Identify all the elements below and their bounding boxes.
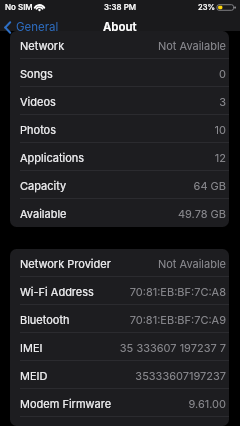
staticText: Videos — [20, 95, 56, 108]
staticText: Not Available — [157, 257, 226, 270]
staticText: 35333607197237 — [135, 369, 226, 382]
button[interactable]: Photos — [10, 115, 229, 143]
button[interactable]: Capacity — [10, 171, 229, 199]
staticText: 23% — [198, 3, 215, 12]
staticText: Network — [20, 39, 65, 52]
staticText: IMEI — [20, 341, 43, 354]
staticText: Capacity — [20, 179, 67, 192]
staticText: 3 — [219, 95, 226, 108]
other: Back — [3, 21, 12, 34]
button[interactable]: Videos — [10, 87, 229, 115]
button[interactable]: Songs — [10, 59, 229, 87]
button[interactable]: Network Provider — [10, 249, 229, 277]
staticText: Network Provider — [20, 257, 111, 270]
staticText: 3:38 PM — [104, 2, 137, 12]
button[interactable]: Wi-Fi Address — [10, 277, 229, 305]
button[interactable]: Network — [10, 31, 229, 59]
staticText: 0 — [219, 67, 226, 80]
staticText: Wi-Fi Address — [20, 285, 94, 298]
staticText: 9.61.00 — [188, 397, 226, 410]
staticText: 64 GB — [193, 179, 226, 192]
staticText: Songs — [20, 67, 53, 80]
staticText: 49.78 GB — [177, 207, 226, 220]
staticText: About — [103, 20, 137, 34]
staticText: Modem Firmware — [20, 397, 112, 410]
button[interactable]: MEID — [10, 361, 229, 389]
button[interactable]: Modem Firmware — [10, 389, 229, 417]
button[interactable]: Back — [3, 20, 59, 34]
staticText: Available — [20, 207, 67, 220]
button[interactable]: Available — [10, 199, 229, 227]
staticText: General — [16, 20, 59, 34]
staticText: 70:81:EB:BF:7C:A8 — [129, 285, 226, 298]
staticText: Not Available — [157, 39, 226, 52]
staticText: 10 — [214, 123, 226, 136]
staticText: Bluetooth — [20, 313, 70, 326]
button[interactable]: IMEI — [10, 333, 229, 361]
staticText: MEID — [20, 369, 48, 382]
staticText: 70:81:EB:BF:7C:A9 — [129, 313, 226, 326]
staticText: No SIM — [5, 2, 33, 12]
staticText: Photos — [20, 123, 57, 136]
staticText: 35 333607 197237 7 — [119, 341, 226, 354]
staticText: 12 — [214, 151, 226, 164]
button[interactable]: Applications — [10, 143, 229, 171]
staticText: Applications — [20, 151, 85, 164]
button[interactable]: Bluetooth — [10, 305, 229, 333]
